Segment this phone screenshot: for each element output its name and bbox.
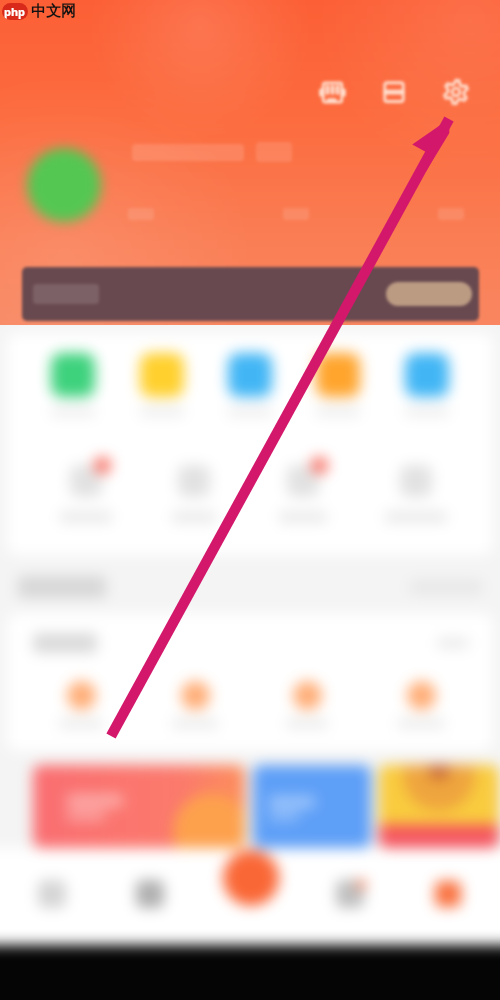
button[interactable] — [33, 765, 245, 848]
button[interactable] — [397, 681, 445, 729]
button[interactable]: Home — [30, 872, 74, 916]
staticText: php — [4, 4, 26, 19]
staticText: 中文网 — [31, 2, 76, 21]
button[interactable] — [22, 267, 479, 321]
button[interactable] — [60, 455, 112, 523]
button[interactable] — [405, 353, 449, 417]
button[interactable] — [27, 148, 101, 222]
button[interactable] — [385, 455, 447, 523]
button[interactable] — [140, 353, 184, 417]
button[interactable] — [228, 353, 272, 417]
button[interactable]: Bills — [128, 872, 172, 916]
button[interactable] — [253, 765, 371, 848]
button[interactable]: Cards — [375, 73, 413, 111]
button[interactable] — [59, 681, 103, 729]
button[interactable] — [51, 353, 95, 417]
button[interactable] — [286, 681, 328, 729]
button[interactable] — [168, 455, 220, 523]
button[interactable]: Ledger — [313, 73, 351, 111]
button[interactable] — [316, 353, 360, 417]
button[interactable]: Me — [426, 872, 470, 916]
button[interactable]: Settings — [437, 73, 475, 111]
button[interactable] — [379, 765, 499, 848]
button[interactable] — [277, 455, 329, 523]
button[interactable] — [172, 681, 218, 729]
button[interactable]: Friends — [328, 872, 372, 916]
button[interactable]: Pay — [223, 850, 279, 906]
